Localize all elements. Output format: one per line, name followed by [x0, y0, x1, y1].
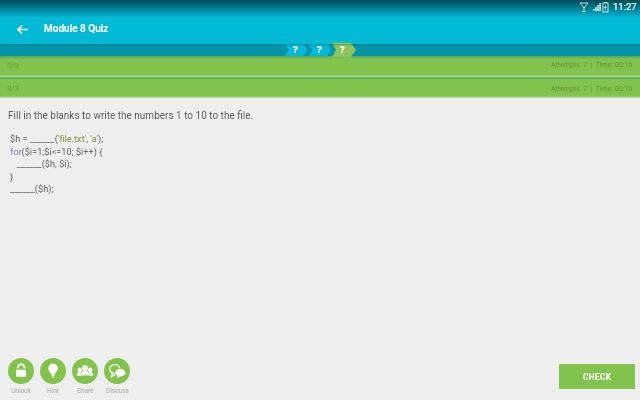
other: Hint	[40, 358, 66, 384]
staticText: Discuss	[106, 387, 129, 395]
staticText: Attempts: 2 | Time: 00:16	[551, 61, 633, 69]
staticText: }	[10, 171, 14, 182]
button[interactable]: Unlock	[5, 358, 37, 395]
other: Unlock	[8, 358, 34, 384]
staticText: 3/3	[7, 84, 19, 93]
button[interactable]: Back	[10, 17, 34, 41]
staticText: 11:27	[613, 1, 637, 12]
staticText: Unlock	[11, 387, 31, 395]
staticText: for($i=1;$i<=10; $i++) {	[10, 146, 103, 157]
staticText: ?	[293, 44, 298, 55]
staticText: Attempts: 2 | Time: 00:16	[551, 85, 633, 93]
staticText: ______($h, $i);	[10, 158, 72, 169]
staticText: CHECK	[583, 372, 612, 382]
button[interactable]: Share	[69, 358, 101, 395]
other: Discuss	[104, 358, 130, 384]
button[interactable]: CHECK	[559, 364, 635, 389]
staticText: ______($h);	[10, 183, 54, 194]
button[interactable]: Discuss	[101, 358, 133, 395]
staticText: Module 8 Quiz	[44, 23, 109, 35]
staticText: 3/3	[7, 61, 19, 70]
staticText: $h = ______('file.txt', 'a');	[10, 133, 104, 144]
staticText: Hint	[47, 387, 59, 395]
staticText: Fill in the blanks to write the numbers …	[8, 110, 254, 122]
staticText: Share	[77, 387, 94, 395]
button[interactable]: Hint	[37, 358, 69, 395]
staticText: ?	[317, 44, 322, 55]
other: Share	[72, 358, 98, 384]
staticText: ?	[340, 44, 345, 55]
